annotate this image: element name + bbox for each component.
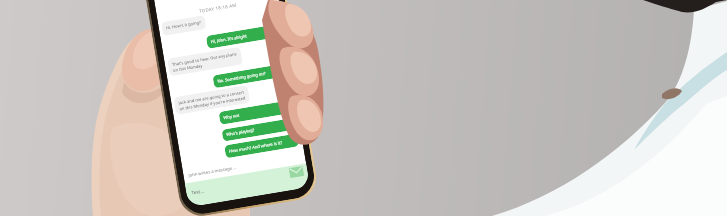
staticText: Jack and me are going to a concert on th… [178,89,246,111]
button[interactable]: That's good to hear. Got any plans on th… [167,47,243,77]
staticText: Text... [191,187,205,196]
button[interactable]: No. Something going on? [212,63,287,88]
button[interactable]: Hi, How's it going? [161,15,207,36]
staticText: How much? And where is it? [229,140,283,155]
button[interactable]: Why not [218,100,294,125]
button[interactable]: Text... [185,163,310,207]
staticText: No. Something going on? [217,71,266,85]
staticText: Hi, How's it going? [165,20,202,32]
button[interactable]: How much? And where is it? [224,133,299,158]
staticText: TODAY 18:18 AM [157,0,279,21]
button[interactable]: Jack and me are going to a concert on th… [173,85,250,115]
button[interactable]: Send message [289,166,304,178]
staticText: Hi, John. It's alright [210,33,248,45]
button[interactable]: Who's playing? [221,118,296,142]
button[interactable]: Hi, John. It's alright [206,24,281,49]
staticText: Why not [223,113,240,121]
staticText: John writes a message ... [188,165,237,179]
staticText: Who's playing? [226,127,255,138]
staticText: That's good to hear. Got any plans on th… [172,51,238,73]
